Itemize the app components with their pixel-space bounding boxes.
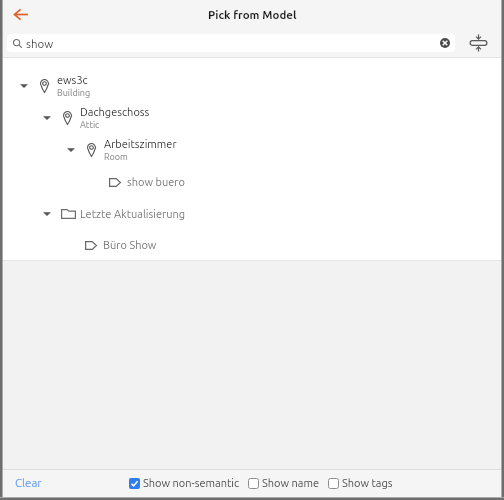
button[interactable]: Collapse all xyxy=(466,31,490,55)
staticText: Dachgeschoss xyxy=(80,106,150,118)
staticText: Show tags xyxy=(342,477,393,489)
staticText: show buero xyxy=(127,176,185,188)
button[interactable]: Arbeitszimmer xyxy=(3,134,501,166)
staticText: Show non-semantic xyxy=(143,477,240,489)
staticText: Letzte Aktualisierung xyxy=(80,208,186,220)
staticText: ews3c xyxy=(57,74,88,86)
button[interactable]: Clear xyxy=(12,473,45,492)
staticText: Building xyxy=(57,88,91,98)
button[interactable]: Dachgeschoss xyxy=(3,102,501,134)
staticText: Büro Show xyxy=(103,239,157,251)
staticText: Attic xyxy=(80,120,100,130)
staticText: Clear xyxy=(15,476,42,489)
staticText: Room xyxy=(104,152,128,162)
button[interactable]: Show name xyxy=(248,477,320,489)
staticText: Show name xyxy=(262,477,320,489)
button[interactable]: Letzte Aktualisierung xyxy=(3,198,501,230)
button[interactable]: Clear search xyxy=(437,35,453,51)
staticText: show xyxy=(26,37,54,50)
button[interactable]: Show non-semantic xyxy=(129,477,240,489)
button[interactable]: Show tags xyxy=(328,477,393,489)
button[interactable]: Back xyxy=(7,0,35,28)
staticText: Arbeitszimmer xyxy=(104,138,177,150)
button[interactable]: Büro Show xyxy=(3,230,501,260)
button[interactable]: show xyxy=(7,34,455,52)
button[interactable]: ews3c xyxy=(3,70,501,102)
button[interactable]: show buero xyxy=(3,166,501,198)
staticText: Pick from Model xyxy=(208,8,297,21)
